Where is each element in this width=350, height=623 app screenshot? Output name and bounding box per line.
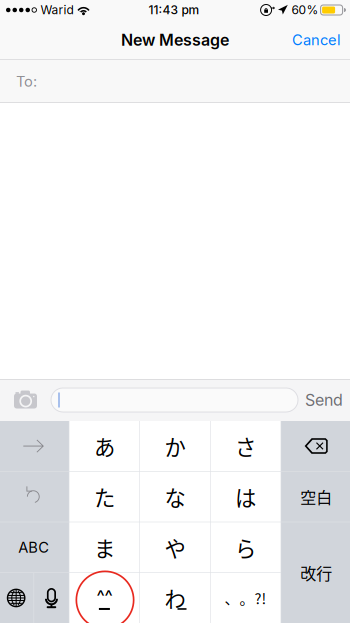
button[interactable]: Next <box>0 421 69 471</box>
staticText: To: <box>16 73 37 90</box>
button[interactable]: Camera <box>0 379 51 421</box>
staticText: New Message <box>121 30 229 50</box>
staticText: Cancel <box>292 31 341 49</box>
staticText: 空白 <box>300 485 332 508</box>
button[interactable]: Delete <box>281 421 350 471</box>
button[interactable]: さ <box>211 421 281 471</box>
button[interactable]: Send <box>298 379 350 421</box>
button[interactable]: な <box>140 472 210 522</box>
staticText: あ <box>94 431 115 461</box>
button[interactable]: あ <box>69 421 139 471</box>
staticText: わ <box>164 582 185 613</box>
staticText: 60% <box>292 3 319 17</box>
staticText: な <box>164 481 185 512</box>
staticText: た <box>94 481 115 512</box>
staticText: ^^ <box>96 586 112 607</box>
button[interactable]: Cancel <box>283 20 350 60</box>
button[interactable]: ^^ <box>69 573 139 623</box>
button[interactable]: は <box>211 472 281 522</box>
staticText: か <box>164 431 185 461</box>
button[interactable]: 改行 <box>281 522 350 623</box>
staticText: ま <box>94 532 115 563</box>
button[interactable]: ま <box>69 522 139 572</box>
staticText: ABC <box>18 538 49 556</box>
staticText: 11:43 pm <box>149 3 200 17</box>
button[interactable]: や <box>140 522 210 572</box>
button[interactable]: Change keyboard <box>0 573 33 623</box>
staticText: さ <box>235 431 256 461</box>
staticText: Warid <box>40 3 73 17</box>
button[interactable]: Dictate <box>34 573 69 623</box>
button[interactable]: わ <box>140 573 210 623</box>
staticText: は <box>235 481 256 512</box>
staticText: Send <box>305 390 343 410</box>
button[interactable]: ABC <box>0 522 69 572</box>
button[interactable]: 、。?! <box>211 573 281 623</box>
button[interactable]: 空白 <box>281 472 350 522</box>
button[interactable]: か <box>140 421 210 471</box>
button[interactable]: To: <box>0 60 350 103</box>
button[interactable]: た <box>69 472 139 522</box>
staticText: 、。?! <box>225 587 267 609</box>
staticText: ら <box>235 532 256 563</box>
staticText: や <box>164 532 185 563</box>
staticText: 改行 <box>300 561 332 584</box>
button[interactable]: Undo <box>0 472 69 522</box>
button[interactable]: ら <box>211 522 281 572</box>
